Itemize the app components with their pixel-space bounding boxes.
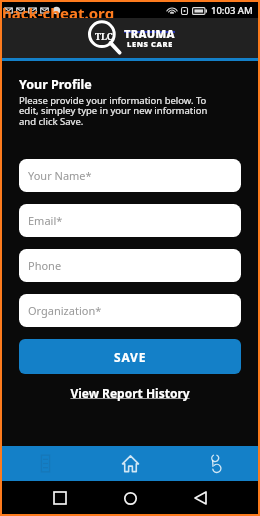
staticText: Your Profile	[19, 76, 92, 93]
staticText: LENS CARE	[127, 39, 173, 49]
staticText: View Report History	[70, 385, 190, 401]
button[interactable]: Home	[88, 446, 173, 481]
staticText: Organization*	[28, 303, 102, 318]
staticText: Email*	[28, 213, 63, 228]
button[interactable]: Home	[118, 486, 142, 510]
staticText: hack-cheat.org	[2, 3, 115, 19]
button[interactable]: Recents	[48, 486, 72, 510]
button[interactable]: View Report History	[19, 385, 241, 401]
staticText: Please provide your information below. T…	[19, 94, 208, 128]
staticText: Phone	[28, 258, 62, 273]
button[interactable]: Phone	[19, 249, 241, 282]
button[interactable]: Call	[173, 446, 258, 481]
staticText: TLC	[95, 30, 113, 42]
button[interactable]: Back	[188, 486, 212, 510]
staticText: SAVE	[114, 349, 147, 365]
staticText: TRAUMA	[124, 26, 175, 41]
button[interactable]: Email*	[19, 204, 241, 237]
button[interactable]: Organization*	[19, 294, 241, 327]
button[interactable]: SAVE	[19, 339, 241, 374]
staticText: 10:03 AM	[211, 4, 253, 17]
staticText: Your Name*	[28, 168, 92, 183]
button[interactable]: Your Name*	[19, 159, 241, 192]
